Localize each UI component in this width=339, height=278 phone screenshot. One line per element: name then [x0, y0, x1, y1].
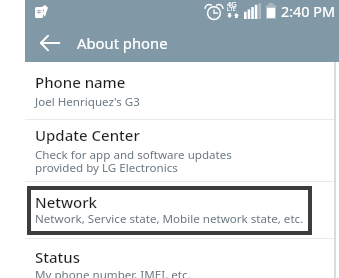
button[interactable]: Navigate up: [30, 26, 69, 62]
staticText: 2:40 PM: [281, 2, 336, 22]
staticText: Network: [35, 192, 97, 212]
staticText: 4G: [227, 0, 237, 9]
staticText: Network, Service state, Mobile network s…: [35, 211, 304, 227]
button[interactable]: [25, 239, 339, 278]
staticText: My phone number, IMEI, etc.: [35, 267, 191, 278]
button[interactable]: [27, 186, 312, 235]
staticText: Update Center: [35, 125, 140, 145]
staticText: Status: [35, 247, 81, 267]
staticText: Phone name: [35, 72, 126, 92]
staticText: Joel Henriquez's G3: [35, 94, 140, 110]
staticText: About phone: [77, 33, 168, 53]
staticText: Check for app and software updates provi…: [35, 147, 232, 176]
button[interactable]: [25, 120, 339, 181]
staticText: LTE: [227, 5, 236, 12]
button[interactable]: [25, 62, 339, 119]
